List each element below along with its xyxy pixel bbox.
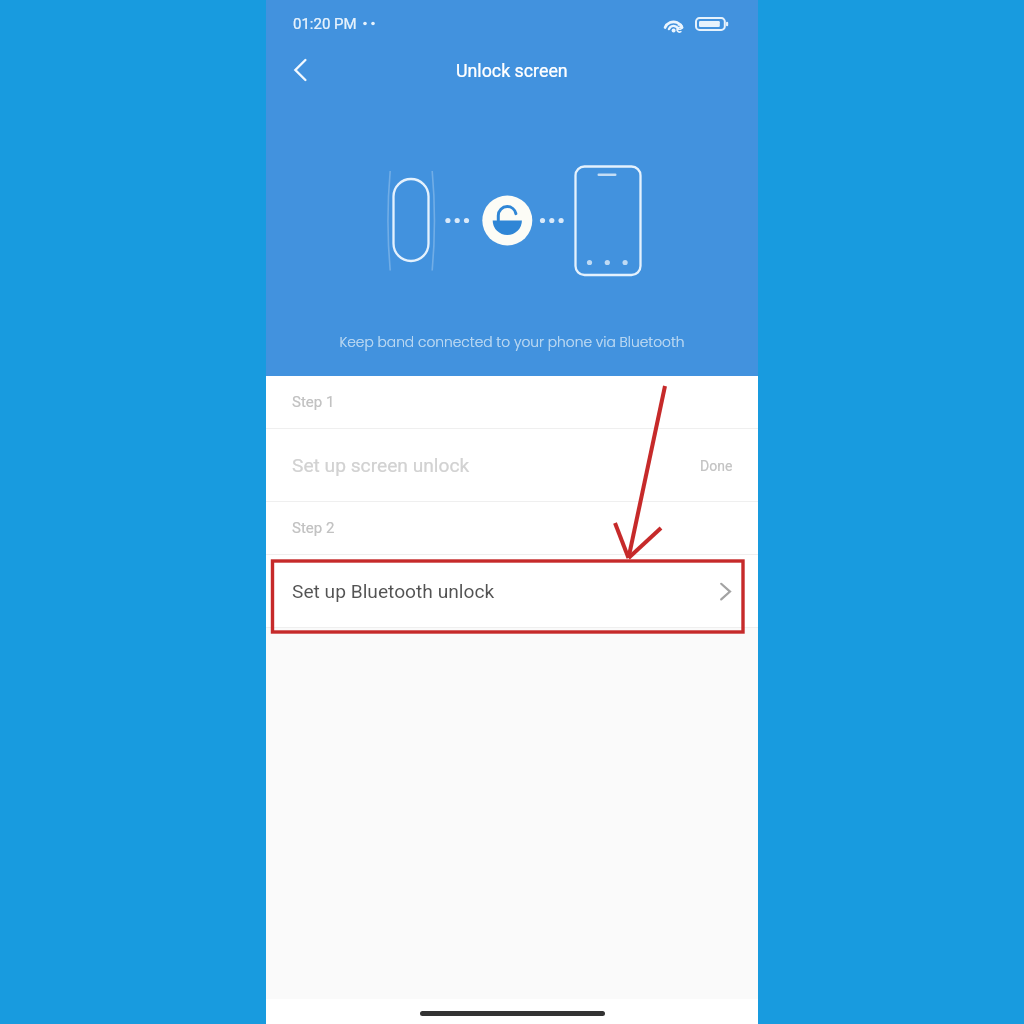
staticText: 01:20 PM	[293, 15, 357, 33]
staticText: Done	[700, 458, 733, 474]
button[interactable]: Set up screen unlock	[266, 429, 758, 501]
button[interactable]: Set up Bluetooth unlock	[266, 555, 758, 627]
staticText: Step 1	[292, 393, 335, 411]
staticText: Step 2	[292, 519, 335, 537]
staticText: Set up Bluetooth unlock	[292, 580, 495, 603]
staticText: Unlock screen	[456, 60, 568, 81]
staticText: Keep band connected to your phone via Bl…	[339, 333, 685, 352]
button[interactable]: Back	[278, 48, 322, 92]
staticText: Set up screen unlock	[292, 454, 470, 477]
